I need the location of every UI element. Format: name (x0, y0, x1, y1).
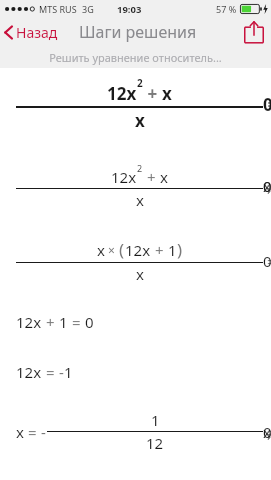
staticText: 2 (137, 162, 143, 174)
staticText: + (151, 240, 168, 260)
staticText: 19:03 (117, 3, 142, 16)
button[interactable]: x (16, 410, 263, 453)
staticText: + (143, 82, 162, 105)
staticText: MTS RUS (39, 3, 77, 15)
staticText: = (24, 422, 41, 442)
staticText: x (136, 190, 144, 210)
staticText: ) (177, 238, 183, 261)
staticText: - (59, 362, 64, 382)
staticText: 12 (146, 433, 164, 453)
staticText: - (41, 422, 46, 442)
staticText: 12x (16, 362, 42, 382)
button[interactable]: 12x (16, 312, 94, 332)
staticText: x (160, 167, 168, 187)
staticText: 57 % (216, 3, 237, 15)
staticText: 2 (137, 76, 143, 90)
staticText: + (143, 167, 160, 187)
staticText: 1 (168, 240, 177, 260)
staticText: × (105, 242, 119, 258)
staticText: x (136, 264, 144, 284)
staticText: 12x (111, 167, 137, 187)
staticText: Назад (16, 23, 58, 42)
staticText: 12x (107, 82, 137, 105)
button[interactable]: 12x (16, 162, 263, 210)
staticText: x (135, 109, 145, 132)
button[interactable]: Поделиться (243, 20, 265, 44)
staticText: x (97, 240, 105, 260)
staticText: 3G (82, 3, 94, 15)
staticText: 1 (151, 410, 160, 430)
staticText: = (42, 362, 59, 382)
staticText: + (42, 312, 59, 332)
staticText: 1 (59, 312, 68, 332)
staticText: x (162, 82, 172, 105)
staticText: Решить уравнение относитель... (49, 50, 222, 65)
button[interactable]: 12x (16, 362, 73, 382)
button[interactable]: x (16, 238, 263, 284)
staticText: 0 (85, 312, 94, 332)
staticText: x (16, 422, 24, 442)
staticText: 12x (125, 240, 151, 260)
staticText: 12x (16, 312, 42, 332)
button[interactable]: Назад (0, 19, 64, 46)
staticText: = (68, 312, 85, 332)
staticText: ( (119, 238, 125, 261)
staticText: Шаги решения (79, 21, 197, 43)
button[interactable]: Решить уравнение относитель... (0, 46, 271, 68)
staticText: 1 (64, 362, 73, 382)
button[interactable]: 12x (16, 76, 263, 132)
